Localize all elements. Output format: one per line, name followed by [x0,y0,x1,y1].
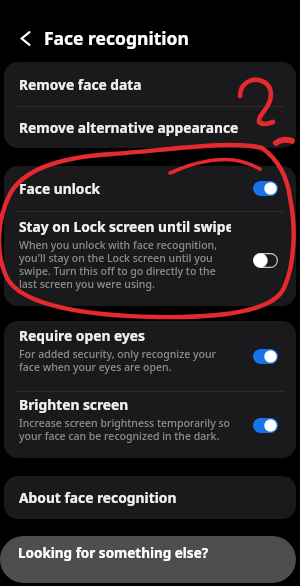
staticText: For added security, only recognize your … [19,347,237,374]
staticText: Face unlock [19,179,101,198]
button[interactable]: Brighten screen [4,392,296,458]
staticText: Brighten screen [19,395,129,414]
staticText: Remove face data [19,75,142,94]
button[interactable]: Remove face data [4,62,296,106]
button[interactable]: Looking for something else? [0,536,296,583]
button[interactable]: About face recognition [4,476,296,519]
button[interactable]: On [253,181,278,196]
button[interactable]: Require open eyes [4,321,296,391]
button[interactable]: Face unlock [4,166,296,211]
button[interactable]: Back [19,27,32,49]
staticText: Looking for something else? [18,544,209,562]
button[interactable]: Remove alternative appearance [4,107,296,148]
staticText: Remove alternative appearance [19,118,239,137]
staticText: When you unlock with face recognition, y… [19,238,231,291]
button[interactable]: Stay on Lock screen until swipe [4,212,296,306]
button[interactable]: Off [253,253,278,268]
staticText: Increase screen brightness temporarily s… [19,416,247,443]
button[interactable]: On [253,349,278,364]
staticText: Stay on Lock screen until swipe [19,217,231,236]
button[interactable]: On [253,418,278,433]
staticText: Require open eyes [19,326,145,345]
staticText: Face recognition [44,26,189,50]
staticText: About face recognition [19,488,177,507]
